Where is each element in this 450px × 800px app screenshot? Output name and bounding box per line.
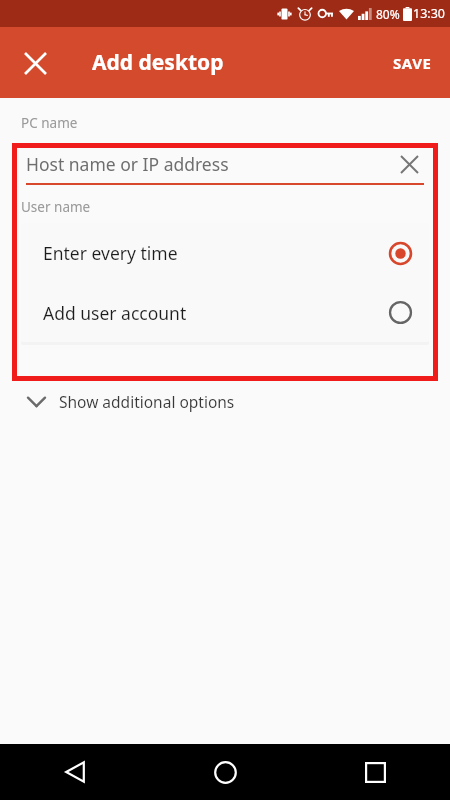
staticText: SAVE (393, 53, 432, 73)
button[interactable]: Close (9, 37, 61, 89)
staticText: 13:30 (413, 5, 445, 22)
staticText: 80% (376, 6, 400, 22)
staticText: Add desktop (92, 48, 224, 77)
button[interactable]: Enter every time (21, 223, 429, 283)
staticText: Enter every time (43, 241, 389, 265)
button[interactable]: Show additional options (0, 386, 450, 416)
staticText: PC name (21, 114, 78, 132)
staticText: Add user account (43, 301, 389, 325)
staticText: Show additional options (59, 391, 235, 412)
button[interactable]: Back (0, 744, 150, 800)
button[interactable]: Recent apps (300, 744, 450, 800)
button[interactable]: Clear (394, 149, 424, 179)
button[interactable]: SAVE (375, 37, 450, 89)
button[interactable]: Host name or IP address (26, 145, 424, 183)
button[interactable]: Add user account (21, 283, 429, 342)
button[interactable]: Home (150, 744, 300, 800)
staticText: Host name or IP address (26, 152, 229, 176)
staticText: User name (21, 198, 91, 216)
